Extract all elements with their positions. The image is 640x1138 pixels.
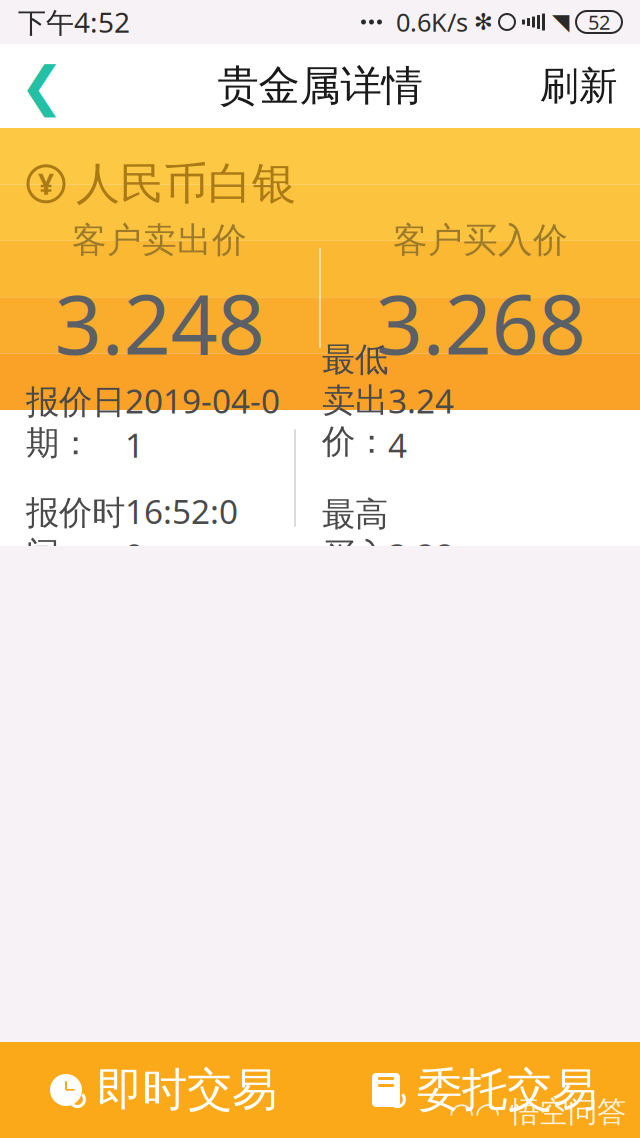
staticText: 下午4:52: [18, 3, 130, 41]
staticText: ✻: [474, 9, 493, 35]
staticText: ◥: [552, 9, 569, 35]
staticText: 最高买入价：: [322, 494, 388, 617]
staticText: 3.282: [388, 489, 454, 622]
staticText: 即时交易: [97, 1062, 277, 1118]
button[interactable]: Back: [0, 44, 84, 128]
staticText: 报价日期：: [26, 382, 125, 464]
staticText: ¥: [38, 165, 54, 202]
staticText: 3.244: [388, 334, 454, 467]
button[interactable]: ↻: [320, 1042, 640, 1138]
staticText: 贵金属详情: [217, 61, 422, 111]
staticText: 客户卖出价: [72, 219, 247, 261]
staticText: 客户买入价: [393, 219, 568, 261]
button[interactable]: ↻: [0, 1042, 320, 1138]
staticText: 人民币白银: [76, 157, 296, 211]
staticText: ❮: [19, 56, 64, 116]
staticText: 委托交易: [417, 1062, 597, 1118]
staticText: 报价时间：: [26, 492, 125, 574]
staticText: ↻: [66, 1085, 88, 1115]
staticText: 最低卖出价：: [322, 339, 388, 462]
staticText: 0.6K/s: [396, 5, 468, 39]
staticText: 2019-04-01: [125, 378, 280, 467]
staticText: 3.268: [375, 267, 585, 377]
staticText: ◠◠ 悟空问答: [449, 1094, 626, 1130]
staticText: 52: [588, 9, 610, 35]
staticText: 3.248: [54, 267, 264, 377]
staticText: 刷新: [540, 62, 618, 110]
staticText: ↻: [386, 1085, 408, 1115]
staticText: 16:52:09: [125, 489, 238, 577]
button[interactable]: 刷新: [518, 44, 640, 128]
